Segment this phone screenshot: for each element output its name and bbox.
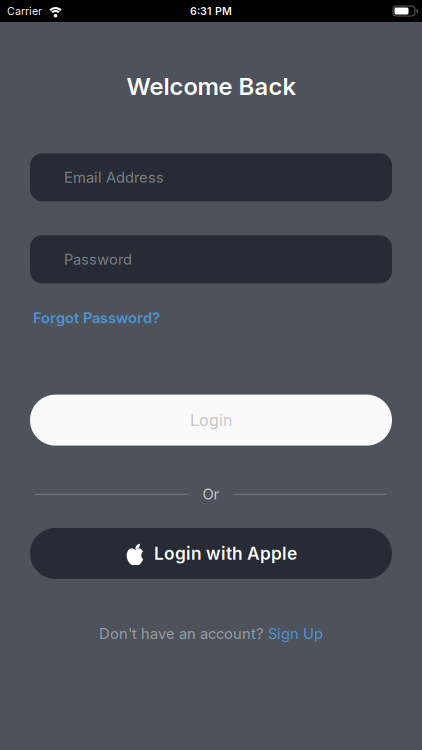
staticText: Carrier: [7, 5, 42, 17]
button[interactable]: Login: [30, 395, 392, 446]
staticText: Forgot Password?: [33, 309, 160, 327]
staticText: Sign Up: [268, 625, 323, 642]
staticText: 6:31 PM: [190, 5, 232, 17]
staticText: Welcome Back: [126, 72, 295, 100]
staticText: Password: [64, 251, 132, 268]
staticText: Login with Apple: [154, 543, 297, 564]
staticText: Don't have an account?: [99, 625, 263, 642]
staticText: Email Address: [64, 169, 164, 186]
button[interactable]: Password: [30, 235, 392, 283]
staticText: Login: [190, 411, 232, 430]
button[interactable]: Email Address: [30, 153, 392, 201]
button[interactable]: Sign Up: [268, 625, 323, 642]
button[interactable]: Forgot Password?: [33, 309, 160, 327]
button[interactable]: Login with Apple: [30, 528, 392, 579]
staticText: Or: [202, 486, 219, 503]
